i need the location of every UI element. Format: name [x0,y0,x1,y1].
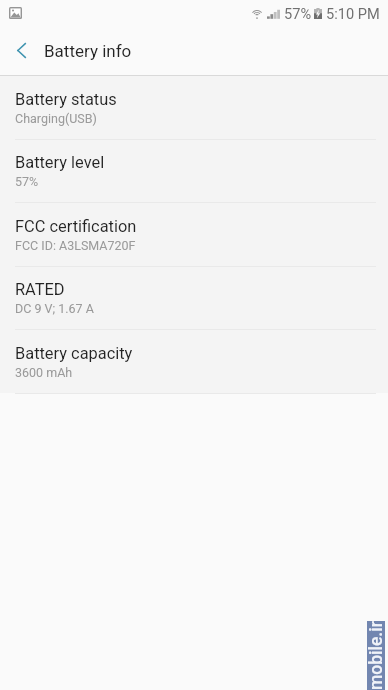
button[interactable]: Navigate up [0,26,44,75]
staticText: 57% [15,174,39,189]
staticText: 57% [284,5,312,22]
button[interactable]: RATED [0,267,388,329]
staticText: FCC ID: A3LSMA720F [15,238,136,253]
staticText: Battery capacity [15,344,133,363]
staticText: FCC certification [15,217,137,236]
staticText: Battery level [15,153,105,172]
staticText: Battery status [15,90,117,109]
button[interactable]: Battery level [0,140,388,202]
staticText: DC 9 V; 1.67 A [15,301,94,316]
button[interactable]: Battery capacity [0,330,388,393]
staticText: 5:10 PM [326,5,380,22]
staticText: RATED [15,280,65,299]
staticText: 3600 mAh [15,365,73,380]
staticText: Battery info [44,41,132,61]
button[interactable]: FCC certification [0,203,388,266]
staticText: Charging(USB) [15,111,97,126]
button[interactable]: Battery status [0,76,388,139]
